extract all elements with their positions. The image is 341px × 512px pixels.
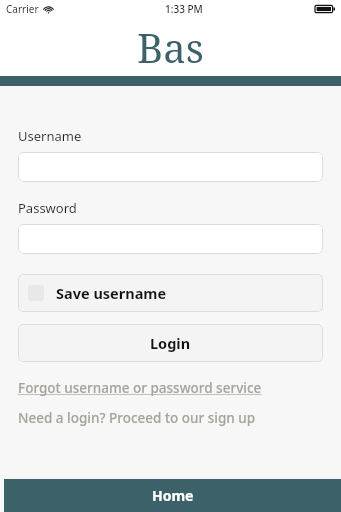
staticText: 1:33 PM (165, 2, 203, 16)
staticText: Password (18, 199, 77, 217)
button[interactable] (18, 152, 323, 182)
staticText: Username (18, 127, 82, 145)
button[interactable] (18, 224, 323, 254)
staticText: Bas (137, 20, 204, 74)
staticText: Carrier (6, 2, 39, 16)
button[interactable]: Need a login? Proceed to our sign up (18, 409, 256, 427)
button[interactable]: Login (18, 324, 323, 362)
staticText: Home (152, 486, 194, 505)
staticText: Login (150, 333, 191, 353)
button[interactable]: Save username (18, 274, 323, 312)
button[interactable]: Forgot username or password service (18, 379, 262, 397)
button[interactable]: Home (4, 479, 341, 512)
staticText: Save username (56, 283, 167, 303)
